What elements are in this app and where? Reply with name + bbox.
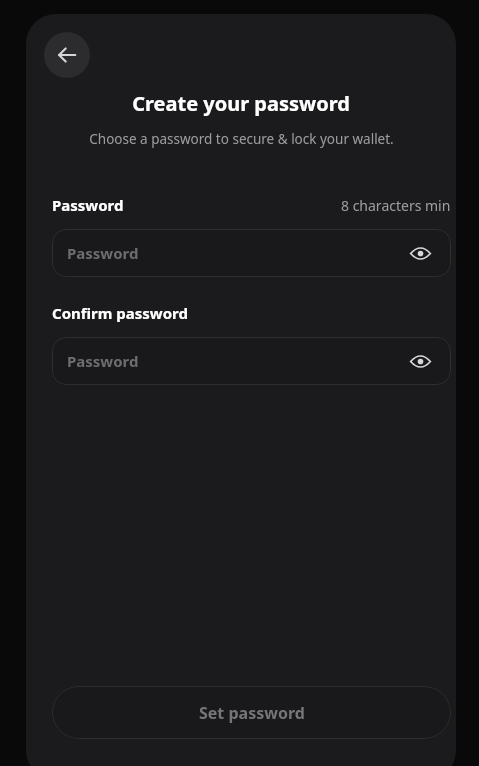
staticText: Choose a password to secure & lock your … — [89, 130, 394, 148]
button[interactable]: Set password — [52, 686, 451, 739]
button[interactable]: Password — [52, 229, 451, 277]
staticText: Create your password — [132, 90, 350, 117]
staticText: Confirm password — [52, 303, 188, 323]
staticText: Set password — [199, 702, 305, 724]
staticText: Password — [67, 243, 139, 263]
button[interactable]: Show password — [407, 348, 433, 374]
button[interactable]: Back — [44, 32, 90, 78]
staticText: 8 characters min — [341, 196, 451, 215]
staticText: Password — [52, 195, 124, 215]
button[interactable]: Password — [52, 337, 451, 385]
button[interactable]: Show password — [407, 240, 433, 266]
staticText: Password — [67, 351, 139, 371]
